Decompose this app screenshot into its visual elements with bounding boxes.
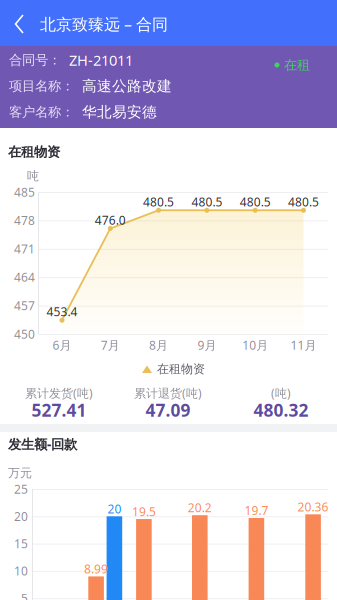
staticText: 480.5 <box>191 194 222 210</box>
staticText: 6月 <box>52 337 71 353</box>
staticText: 25 <box>14 481 28 497</box>
staticText: 19.5 <box>132 503 156 520</box>
staticText: 480.32 <box>253 398 308 422</box>
staticText: 在租物资 <box>157 361 205 376</box>
staticText: 457 <box>14 297 35 314</box>
staticText: 47.09 <box>145 398 190 422</box>
staticText: 华北易安德 <box>82 103 157 121</box>
button[interactable]: 返回 <box>2 2 36 46</box>
staticText: 高速公路改建 <box>82 77 172 95</box>
staticText: 万元 <box>8 465 32 480</box>
staticText: 20.36 <box>298 499 329 515</box>
staticText: 527.41 <box>31 398 86 422</box>
staticText: 471 <box>14 241 35 257</box>
staticText: 累计退货(吨) <box>134 385 202 401</box>
staticText: 9月 <box>197 337 216 353</box>
staticText: 15 <box>14 535 28 552</box>
staticText: 在租物资 <box>8 144 60 160</box>
staticText: 11月 <box>290 337 316 353</box>
staticText: 19.7 <box>244 502 268 519</box>
staticText: 发生额-回款 <box>8 435 77 453</box>
staticText: 累计发货(吨) <box>25 385 93 401</box>
staticText: 480.5 <box>288 194 319 210</box>
staticText: 480.5 <box>143 194 174 210</box>
staticText: 480.5 <box>240 194 271 210</box>
staticText: 北京致臻远 – 合同 <box>40 13 168 35</box>
staticText: 在租 <box>284 57 310 73</box>
staticText: (吨) <box>271 385 291 401</box>
staticText: 20 <box>14 508 28 524</box>
staticText: 20 <box>107 501 121 517</box>
staticText: 10 <box>14 563 28 579</box>
staticText: 450 <box>14 326 35 342</box>
staticText: 7月 <box>101 337 120 353</box>
staticText: 476.0 <box>95 212 126 228</box>
staticText: 5 <box>21 590 28 600</box>
staticText: 8月 <box>149 337 168 353</box>
staticText: ZH-21011 <box>69 50 133 70</box>
staticText: 8.99 <box>84 561 108 577</box>
staticText: 485 <box>14 184 35 200</box>
staticText: 20.2 <box>188 499 212 516</box>
staticText: 项目名称： <box>9 78 74 94</box>
staticText: 客户名称： <box>9 104 74 120</box>
staticText: 10月 <box>242 337 268 353</box>
staticText: 453.4 <box>46 303 77 320</box>
staticText: 合同号： <box>9 52 61 68</box>
staticText: 吨 <box>27 168 39 183</box>
staticText: 464 <box>14 269 35 285</box>
staticText: 478 <box>14 212 35 228</box>
